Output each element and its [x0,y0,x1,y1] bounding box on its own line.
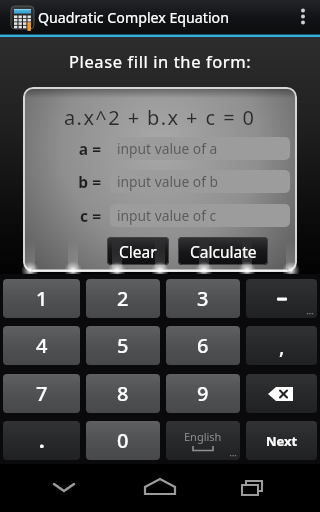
button[interactable] [290,0,320,34]
staticText: Next [266,432,298,450]
staticText: , [279,333,285,360]
staticText: 5 [117,332,129,359]
button[interactable]: 4 [3,326,80,365]
button[interactable]: English [166,421,240,460]
button[interactable]: input value of b [110,170,290,193]
staticText: input value of a [117,139,218,158]
button[interactable]: Calculate [178,237,268,265]
button[interactable]: 0 [86,421,160,460]
staticText: input value of c [117,206,217,225]
staticText: 7 [36,380,48,407]
staticText: input value of b [117,172,219,191]
button[interactable]: Clear [107,237,169,265]
button[interactable]: 6 [166,326,240,365]
staticText: a.x^2 + b.x + c = 0 [64,104,256,131]
button[interactable] [136,464,184,512]
button[interactable]: . [3,421,80,460]
staticText: English [184,429,222,444]
staticText: 3 [197,285,209,312]
staticText: 0 [117,427,129,454]
staticText: c = [61,205,101,226]
staticText: 6 [197,332,209,359]
button[interactable]: input value of c [110,204,290,227]
staticText: 8 [117,380,129,407]
button[interactable]: input value of a [110,137,290,160]
button[interactable]: , [246,326,317,365]
staticText: 2 [117,285,129,312]
button[interactable]: 7 [3,374,80,413]
staticText: 9 [197,380,209,407]
button[interactable]: 2 [86,279,160,318]
button[interactable]: 9 [166,374,240,413]
staticText: b = [61,171,101,192]
button[interactable] [246,374,317,413]
button[interactable] [40,464,88,512]
button[interactable] [246,279,317,318]
staticText: Calculate [190,241,257,262]
staticText: Clear [119,241,157,262]
staticText: a = [61,138,101,159]
staticText: 4 [36,332,48,359]
button[interactable] [227,464,275,512]
button[interactable]: 8 [86,374,160,413]
staticText: Quadratic Complex Equation [38,8,229,27]
button[interactable]: 3 [166,279,240,318]
button[interactable]: 1 [3,279,80,318]
button[interactable]: 5 [86,326,160,365]
button[interactable]: Next [246,421,317,460]
staticText: Please fill in the form: [69,50,252,72]
staticText: 1 [36,285,48,312]
staticText: . [39,427,45,454]
